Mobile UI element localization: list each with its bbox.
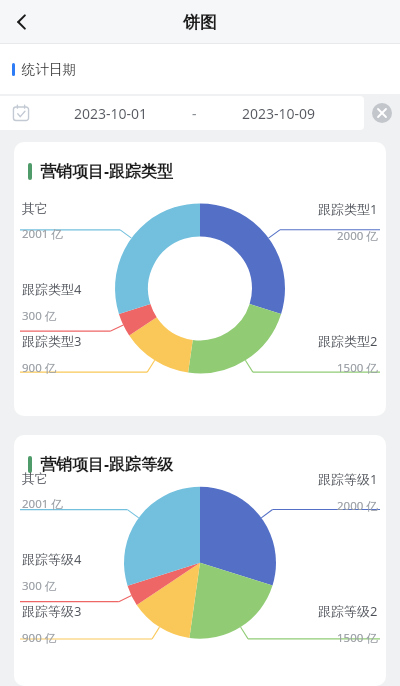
staticText: 营销项目-跟踪等级: [40, 453, 174, 475]
button[interactable]: 营销项目-跟踪类型: [14, 142, 386, 416]
staticText: 饼图: [183, 12, 217, 33]
staticText: 300 亿: [22, 578, 57, 594]
staticText: 2023-10-09: [242, 104, 316, 123]
staticText: 其它: [22, 200, 48, 216]
staticText: 其它: [22, 470, 48, 486]
staticText: 2000 亿: [337, 228, 378, 244]
staticText: 跟踪类型2: [318, 332, 378, 350]
staticText: 统计日期: [22, 61, 76, 78]
staticText: 跟踪类型4: [22, 280, 82, 298]
staticText: 2000 亿: [337, 498, 378, 514]
staticText: 1500 亿: [337, 630, 378, 646]
staticText: 1500 亿: [337, 360, 378, 376]
staticText: 营销项目-跟踪类型: [40, 160, 174, 182]
staticText: 跟踪类型1: [318, 200, 378, 218]
staticText: 跟踪等级2: [318, 602, 378, 620]
staticText: -: [192, 104, 197, 123]
staticText: 2001 亿: [22, 226, 63, 242]
staticText: 900 亿: [22, 630, 57, 646]
staticText: 跟踪等级1: [318, 470, 378, 488]
staticText: 300 亿: [22, 308, 57, 324]
button[interactable]: Clear date range: [364, 96, 400, 130]
staticText: 2023-10-01: [74, 104, 148, 123]
staticText: 跟踪类型3: [22, 332, 82, 350]
staticText: 跟踪等级3: [22, 602, 82, 620]
button[interactable]: 营销项目-跟踪等级: [14, 435, 386, 686]
staticText: 跟踪等级4: [22, 550, 82, 568]
staticText: 900 亿: [22, 360, 57, 376]
staticText: 2001 亿: [22, 496, 63, 512]
button[interactable]: Back: [0, 0, 44, 44]
button[interactable]: 2023-10-01: [0, 96, 364, 130]
